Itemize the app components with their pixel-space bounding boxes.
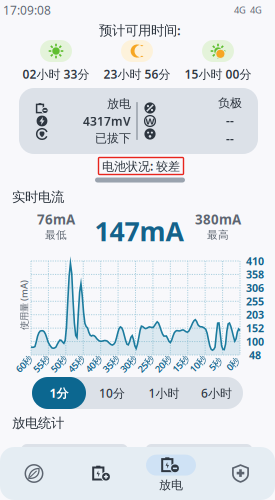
staticText: 02小时 33分 xyxy=(22,66,89,82)
staticText: 预计可用时间: xyxy=(99,21,181,39)
staticText: 10秒 xyxy=(188,358,207,370)
staticText: 放电 xyxy=(107,96,131,111)
button[interactable]: 1小时 xyxy=(138,377,190,409)
staticText: 147mA xyxy=(94,213,183,249)
staticText: 4G 4G xyxy=(234,4,262,16)
staticText: 使用量 (mA) xyxy=(0,299,49,311)
staticText: 最低 xyxy=(45,228,67,241)
staticText: -- xyxy=(226,130,234,146)
staticText: 50秒 xyxy=(49,358,68,370)
button[interactable]: 10分 xyxy=(86,377,138,409)
staticText: 60秒 xyxy=(14,358,33,370)
staticText: 电池状况: 较差 xyxy=(102,158,180,174)
staticText: 35秒 xyxy=(101,358,120,370)
button[interactable]: 1分 xyxy=(32,377,86,409)
staticText: 15小时 00分 xyxy=(184,66,251,82)
staticText: 203 xyxy=(246,308,264,322)
staticText: 15秒 xyxy=(171,358,190,370)
staticText: 1小时 xyxy=(148,385,179,401)
staticText: 358 xyxy=(246,267,264,281)
staticText: -- xyxy=(226,112,234,128)
staticText: 25秒 xyxy=(136,358,155,370)
staticText: 最高 xyxy=(207,228,229,241)
staticText: 100 xyxy=(246,334,264,349)
staticText: 23小时 56分 xyxy=(103,66,170,82)
button[interactable]: 6小时 xyxy=(190,377,243,409)
staticText: 76mA xyxy=(37,211,75,228)
staticText: 30秒 xyxy=(119,358,138,370)
staticText: 6小时 xyxy=(201,385,232,401)
staticText: 实时电流 xyxy=(12,189,64,205)
staticText: 306 xyxy=(246,281,264,295)
staticText: 17:09:08 xyxy=(3,2,51,18)
staticText: 45秒 xyxy=(67,358,86,370)
staticText: 255 xyxy=(246,294,264,308)
staticText: 负极 xyxy=(218,96,242,110)
staticText: 55秒 xyxy=(32,358,51,370)
button[interactable]: 充电 xyxy=(68,447,136,500)
staticText: 20秒 xyxy=(154,358,173,370)
staticText: 已拔下 xyxy=(95,131,131,146)
staticText: 放电统计 xyxy=(12,415,64,431)
staticText: W xyxy=(145,115,154,127)
staticText: 380mA xyxy=(195,211,241,228)
staticText: 48 xyxy=(249,348,261,362)
button[interactable]: 放电 xyxy=(136,447,206,500)
staticText: 410 xyxy=(246,254,264,268)
staticText: 5秒 xyxy=(208,358,222,370)
staticText: 0秒 xyxy=(226,358,240,370)
staticText: 40秒 xyxy=(84,358,103,370)
staticText: 4317mV xyxy=(83,113,131,129)
button[interactable]: 省电 xyxy=(0,447,68,500)
staticText: 1分 xyxy=(49,385,68,401)
staticText: 10分 xyxy=(99,385,125,401)
staticText: 放电 xyxy=(159,478,183,492)
staticText: 152 xyxy=(246,321,264,335)
button[interactable]: 健康 xyxy=(206,447,275,500)
